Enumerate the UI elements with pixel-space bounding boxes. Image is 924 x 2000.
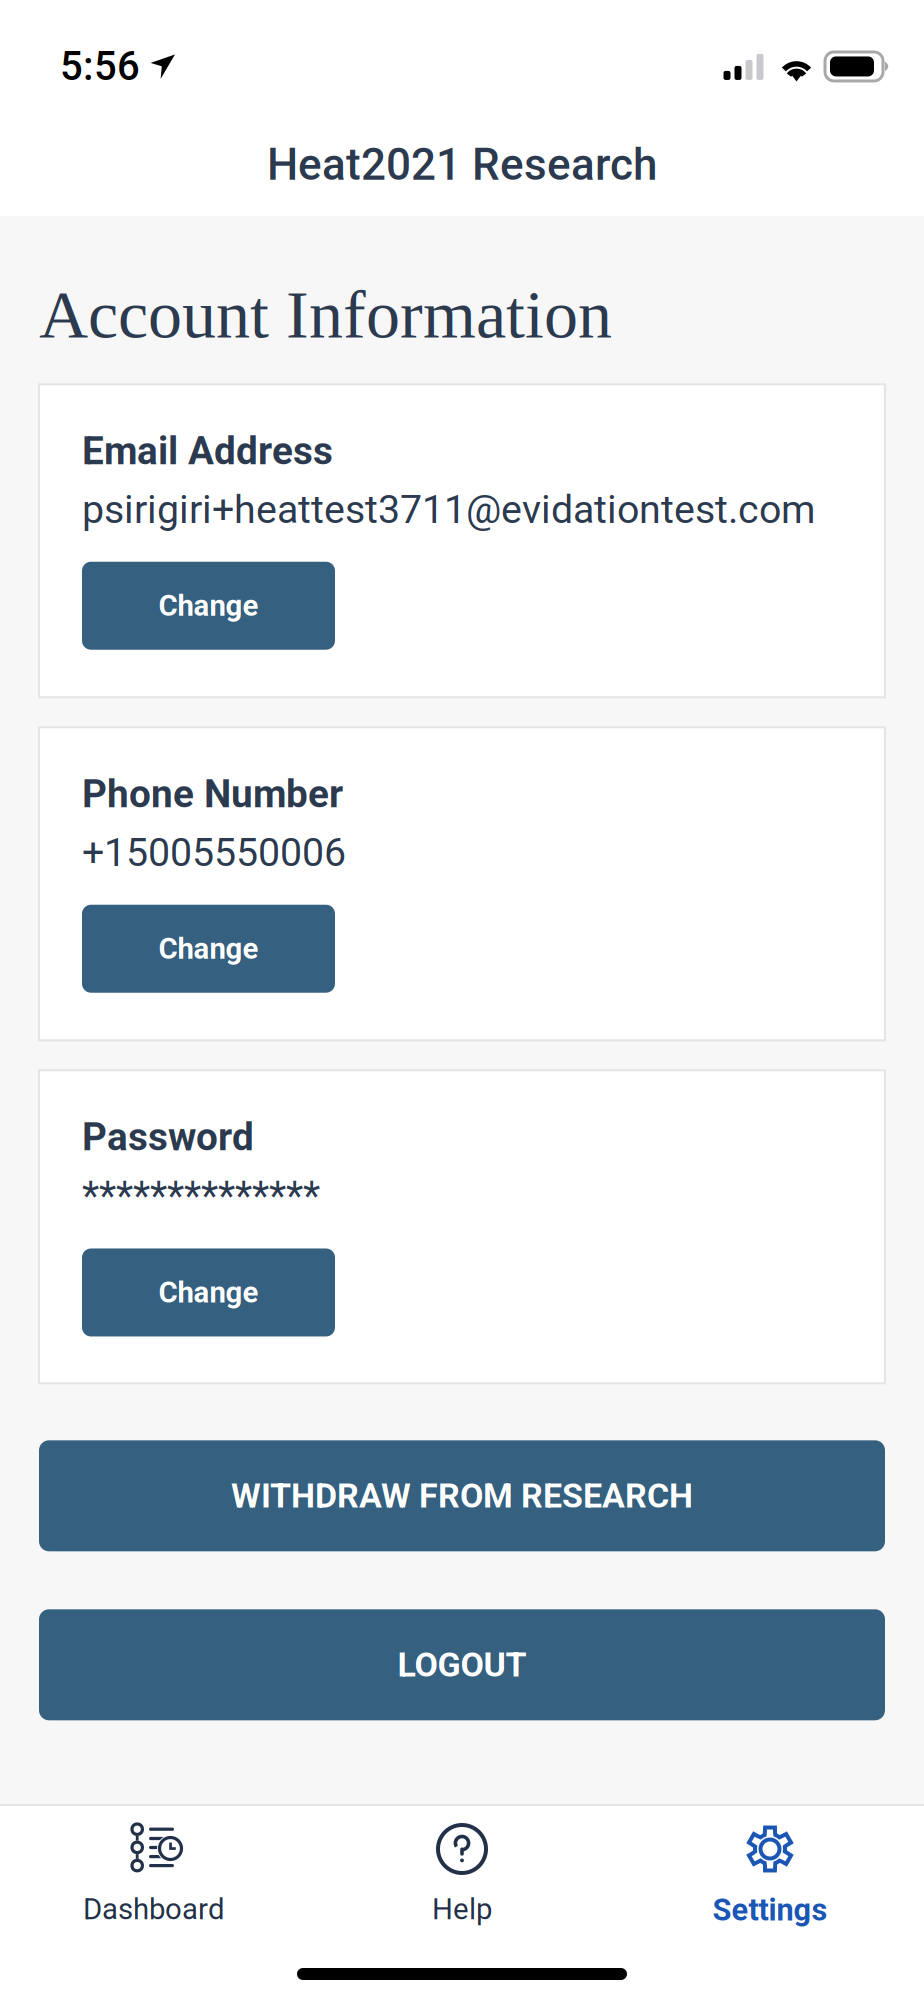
staticText: Phone Number (82, 771, 343, 817)
staticText: Password (82, 1114, 254, 1160)
button[interactable]: Settings (616, 1824, 924, 1944)
staticText: 5:56 (60, 43, 140, 90)
staticText: Email Address (82, 428, 333, 474)
staticText: Account Information (39, 277, 612, 352)
staticText: WITHDRAW FROM RESEARCH (231, 1476, 693, 1516)
staticText: Settings (712, 1892, 827, 1928)
staticText: Heat2021 Research (267, 139, 657, 191)
staticText: ************** (82, 1173, 320, 1219)
staticText: Dashboard (83, 1892, 225, 1926)
button[interactable]: Change (82, 562, 335, 650)
button[interactable]: Change (82, 905, 335, 993)
button[interactable]: Help (308, 1824, 616, 1944)
staticText: Help (432, 1892, 492, 1926)
staticText: Change (158, 1275, 258, 1310)
staticText: Change (158, 588, 258, 623)
staticText: psirigiri+heattest3711@evidationtest.com (82, 487, 815, 533)
button[interactable]: LOGOUT (39, 1609, 885, 1720)
button[interactable]: Dashboard (0, 1824, 308, 1944)
staticText: LOGOUT (397, 1645, 526, 1685)
button[interactable]: WITHDRAW FROM RESEARCH (39, 1440, 885, 1551)
staticText: +15005550006 (82, 830, 346, 876)
button[interactable]: Change (82, 1248, 335, 1336)
staticText: Change (158, 931, 258, 966)
